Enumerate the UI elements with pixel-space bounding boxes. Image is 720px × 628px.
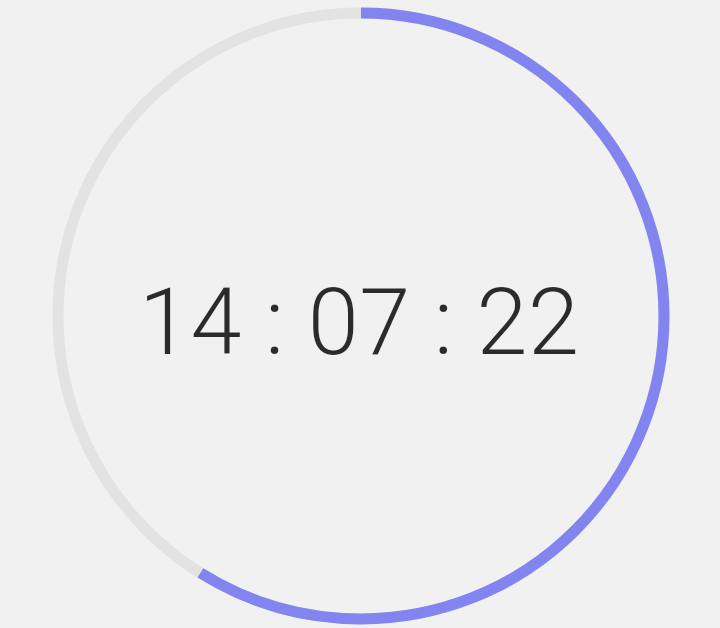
staticText: 14 : 07 : 22 [139,269,580,377]
